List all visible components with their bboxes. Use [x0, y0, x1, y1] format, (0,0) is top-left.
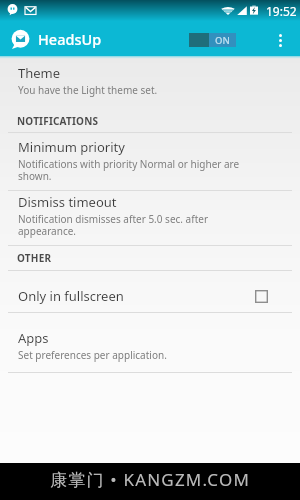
staticText: Dismiss timeout [18, 193, 117, 211]
staticText: You have the Light theme set. [18, 83, 250, 97]
staticText: Minimum priority [18, 138, 125, 156]
staticText: HeadsUp [38, 29, 102, 49]
button[interactable]: HeadsUp on/off switch [189, 33, 236, 47]
button[interactable]: More options [270, 30, 290, 50]
staticText: 19:52 [266, 3, 297, 17]
staticText: Theme [18, 64, 61, 82]
staticText: Notifications with priority Normal or hi… [18, 157, 250, 183]
staticText: Set preferences per application. [18, 348, 250, 362]
staticText: Only in fullscreen [18, 287, 124, 305]
button[interactable]: Theme [0, 58, 300, 102]
button[interactable]: Minimum priority [0, 137, 300, 183]
button[interactable]: Only in fullscreen [0, 281, 300, 311]
staticText: Apps [18, 329, 49, 347]
staticText: OTHER [17, 251, 52, 265]
staticText: ON [215, 34, 230, 47]
staticText: NOTIFICATIONS [17, 114, 99, 128]
staticText: 康掌门 • KANGZM.COM [50, 468, 251, 491]
staticText: Notification dismisses after 5.0 sec. af… [18, 212, 250, 238]
button[interactable]: Dismiss timeout [0, 192, 300, 238]
button[interactable]: Apps [0, 323, 300, 367]
